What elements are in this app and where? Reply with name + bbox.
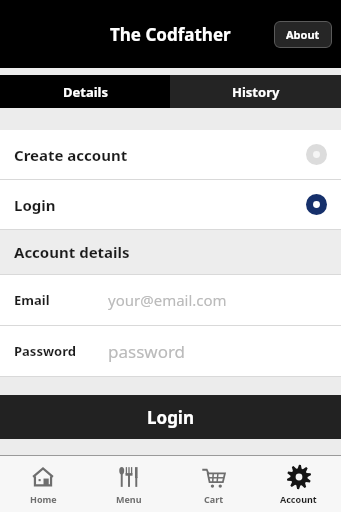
staticText: Login [147,406,195,429]
staticText: Home [30,493,57,505]
staticText: your@email.com [108,290,227,310]
staticText: Email [14,291,50,309]
staticText: Login [14,195,56,215]
button[interactable]: Cart [171,456,256,512]
staticText: Create account [14,145,128,165]
staticText: The Codfather [110,23,231,46]
staticText: Password [14,342,76,360]
staticText: About [286,27,320,42]
button[interactable]: History [170,75,341,108]
button[interactable]: Email [0,275,341,325]
button[interactable]: Details [0,75,170,108]
button[interactable]: Account [256,456,341,512]
button[interactable]: Create account [0,130,341,179]
button[interactable]: Login [0,395,341,439]
staticText: password [108,340,186,363]
button[interactable]: Login [0,180,341,229]
button[interactable]: Home [0,456,86,512]
button[interactable]: About [274,21,332,48]
staticText: History [232,83,280,101]
staticText: Account details [14,242,130,262]
button[interactable]: Menu [86,456,171,512]
staticText: Menu [116,493,142,505]
staticText: Cart [204,493,224,505]
staticText: Details [63,83,108,101]
staticText: Account [280,493,317,505]
button[interactable]: Password [0,326,341,376]
